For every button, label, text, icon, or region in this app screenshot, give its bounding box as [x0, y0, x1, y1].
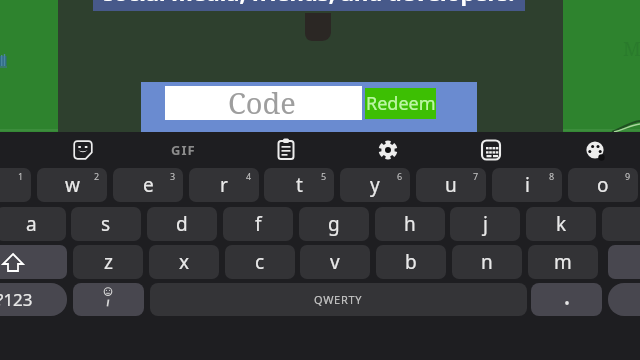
- button[interactable]: ?123: [0, 283, 67, 316]
- button[interactable]: e: [113, 168, 183, 202]
- staticText: n: [481, 249, 493, 275]
- button[interactable]: Settings: [372, 134, 404, 166]
- staticText: 6: [397, 170, 403, 182]
- button[interactable]: b: [376, 245, 446, 279]
- staticText: z: [104, 249, 113, 275]
- staticText: QWERTY: [314, 292, 363, 307]
- staticText: Code: [228, 83, 296, 117]
- staticText: g: [328, 211, 340, 237]
- staticText: b: [405, 249, 417, 275]
- staticText: ?123: [0, 288, 33, 311]
- staticText: m: [554, 249, 572, 275]
- button[interactable]: z: [73, 245, 143, 279]
- staticText: s: [101, 211, 111, 237]
- button[interactable]: Shift: [0, 245, 67, 279]
- staticText: f: [255, 211, 262, 237]
- staticText: c: [255, 249, 265, 275]
- staticText: v: [330, 249, 340, 275]
- staticText: i: [525, 172, 530, 198]
- staticText: y: [370, 172, 380, 198]
- button[interactable]: Backspace: [608, 245, 640, 279]
- button[interactable]: i: [492, 168, 562, 202]
- button[interactable]: t: [264, 168, 334, 202]
- button[interactable]: h: [375, 207, 445, 241]
- button[interactable]: Period: [531, 283, 602, 316]
- button[interactable]: a: [0, 207, 66, 241]
- button[interactable]: Enter: [608, 283, 640, 316]
- staticText: 2: [94, 170, 100, 182]
- staticText: d: [176, 211, 188, 237]
- button[interactable]: Code: [165, 86, 362, 120]
- button[interactable]: o: [568, 168, 638, 202]
- staticText: Me: [623, 36, 640, 62]
- button[interactable]: u: [416, 168, 486, 202]
- button[interactable]: n: [452, 245, 522, 279]
- button[interactable]: d: [147, 207, 217, 241]
- button[interactable]: c: [225, 245, 295, 279]
- button[interactable]: g: [299, 207, 369, 241]
- button[interactable]: m: [528, 245, 598, 279]
- button[interactable]: Emoji and comma: [73, 283, 144, 316]
- staticText: o: [597, 172, 609, 198]
- button[interactable]: Stickers: [67, 134, 99, 166]
- staticText: 9: [625, 170, 631, 182]
- button[interactable]: Redeem: [365, 88, 436, 119]
- button[interactable]: f: [223, 207, 293, 241]
- button[interactable]: Clipboard: [270, 134, 302, 166]
- staticText: e: [143, 172, 154, 198]
- button[interactable]: [0, 168, 31, 202]
- staticText: k: [556, 211, 567, 237]
- staticText: 7: [473, 170, 479, 182]
- staticText: GIF: [171, 141, 196, 159]
- button[interactable]: k: [526, 207, 596, 241]
- staticText: t: [296, 172, 303, 198]
- button[interactable]: r: [189, 168, 259, 202]
- staticText: 1: [18, 170, 24, 182]
- button[interactable]: w: [37, 168, 107, 202]
- staticText: 4: [246, 170, 252, 182]
- button[interactable]: Theme: [579, 134, 611, 166]
- staticText: a: [26, 211, 37, 237]
- button[interactable]: v: [300, 245, 370, 279]
- staticText: Redeem: [366, 91, 436, 116]
- button[interactable]: s: [71, 207, 141, 241]
- button[interactable]: x: [149, 245, 219, 279]
- staticText: r: [220, 172, 228, 198]
- staticText: x: [179, 249, 190, 275]
- button[interactable]: GIF: [158, 136, 208, 164]
- staticText: 8: [549, 170, 555, 182]
- staticText: h: [404, 211, 416, 237]
- button[interactable]: j: [450, 207, 520, 241]
- staticText: w: [65, 172, 80, 198]
- staticText: j: [483, 211, 488, 237]
- staticText: 5: [321, 170, 327, 182]
- button[interactable]: Space: [150, 283, 527, 316]
- button[interactable]: y: [340, 168, 410, 202]
- button[interactable]: Keypad: [475, 134, 507, 166]
- staticText: 3: [170, 170, 176, 182]
- staticText: social media, friends, and developers!: [103, 0, 515, 7]
- staticText: u: [445, 172, 457, 198]
